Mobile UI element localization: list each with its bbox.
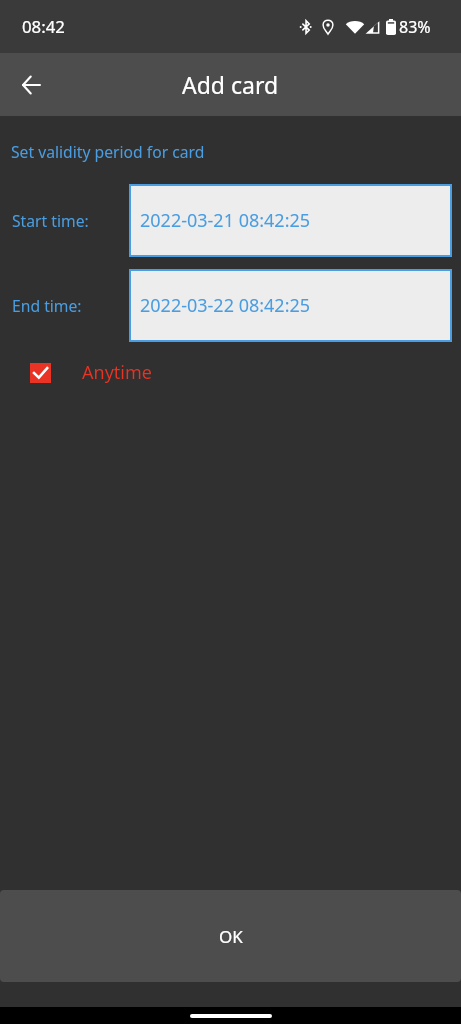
staticText: 83% xyxy=(399,16,431,38)
staticText: OK xyxy=(219,925,243,948)
button[interactable]: Anytime xyxy=(30,360,152,385)
staticText: 2022-03-21 08:42:25 xyxy=(140,208,311,233)
staticText: Anytime xyxy=(82,360,152,385)
button[interactable]: 2022-03-21 08:42:25 xyxy=(129,184,452,257)
staticText: End time: xyxy=(12,295,129,316)
staticText: Set validity period for card xyxy=(11,141,205,162)
button[interactable]: OK xyxy=(0,890,461,982)
button[interactable]: Back xyxy=(0,53,62,116)
staticText: 2022-03-22 08:42:25 xyxy=(140,293,311,318)
button[interactable]: 2022-03-22 08:42:25 xyxy=(129,269,452,342)
staticText: Start time: xyxy=(12,210,129,231)
staticText: Add card xyxy=(182,69,279,100)
staticText: 08:42 xyxy=(22,15,65,38)
